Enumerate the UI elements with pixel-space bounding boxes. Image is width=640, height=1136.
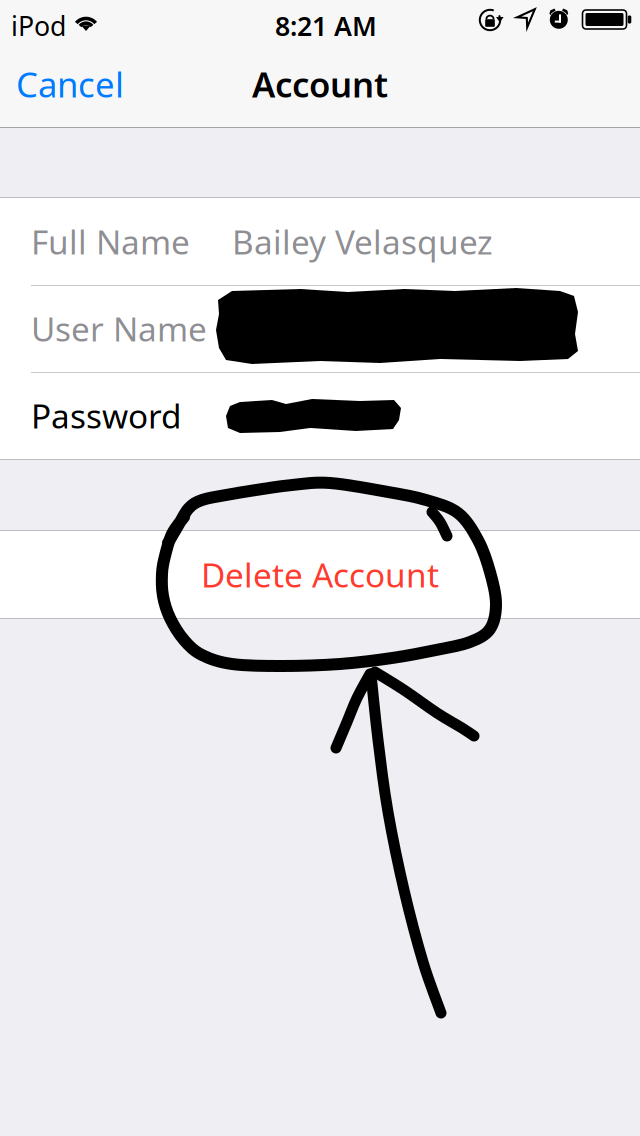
button[interactable]: Password (0, 372, 640, 459)
button[interactable]: Cancel (0, 52, 142, 116)
staticText: Bailey Velasquez (232, 219, 493, 264)
button[interactable]: User Name (0, 285, 640, 372)
staticText: User Name (31, 306, 207, 351)
button[interactable]: Full Name (0, 198, 640, 285)
staticText: iPod (11, 8, 66, 43)
staticText: 8:21 AM (275, 8, 377, 43)
staticText: Full Name (31, 219, 190, 264)
button[interactable]: Delete Account (0, 531, 640, 618)
staticText: Cancel (16, 61, 124, 107)
staticText: Delete Account (201, 552, 439, 597)
staticText: Password (31, 393, 182, 438)
staticText: Account (252, 61, 388, 107)
